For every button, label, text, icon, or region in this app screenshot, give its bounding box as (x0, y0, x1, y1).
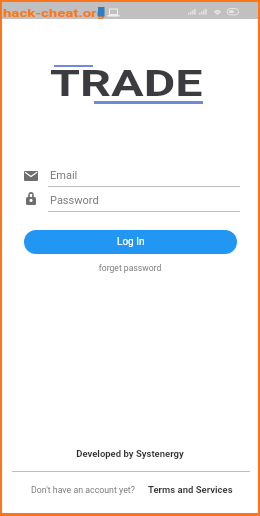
staticText: hack-cheat.org (3, 6, 106, 19)
staticText: Developed by Systenergy (2, 448, 258, 459)
other: Email (24, 171, 38, 181)
button[interactable]: Password (24, 192, 240, 212)
button[interactable]: Log In (24, 230, 237, 254)
staticText: TRADE (50, 61, 203, 105)
button[interactable]: Terms and Services (148, 484, 233, 495)
button[interactable]: Email (24, 167, 240, 187)
button[interactable]: forget password (2, 263, 258, 273)
staticText: Password (50, 194, 99, 207)
staticText: Email (50, 169, 78, 182)
other: Password (26, 192, 36, 205)
staticText: Log In (117, 236, 145, 248)
button[interactable]: Don't have an account yet? (31, 485, 135, 495)
